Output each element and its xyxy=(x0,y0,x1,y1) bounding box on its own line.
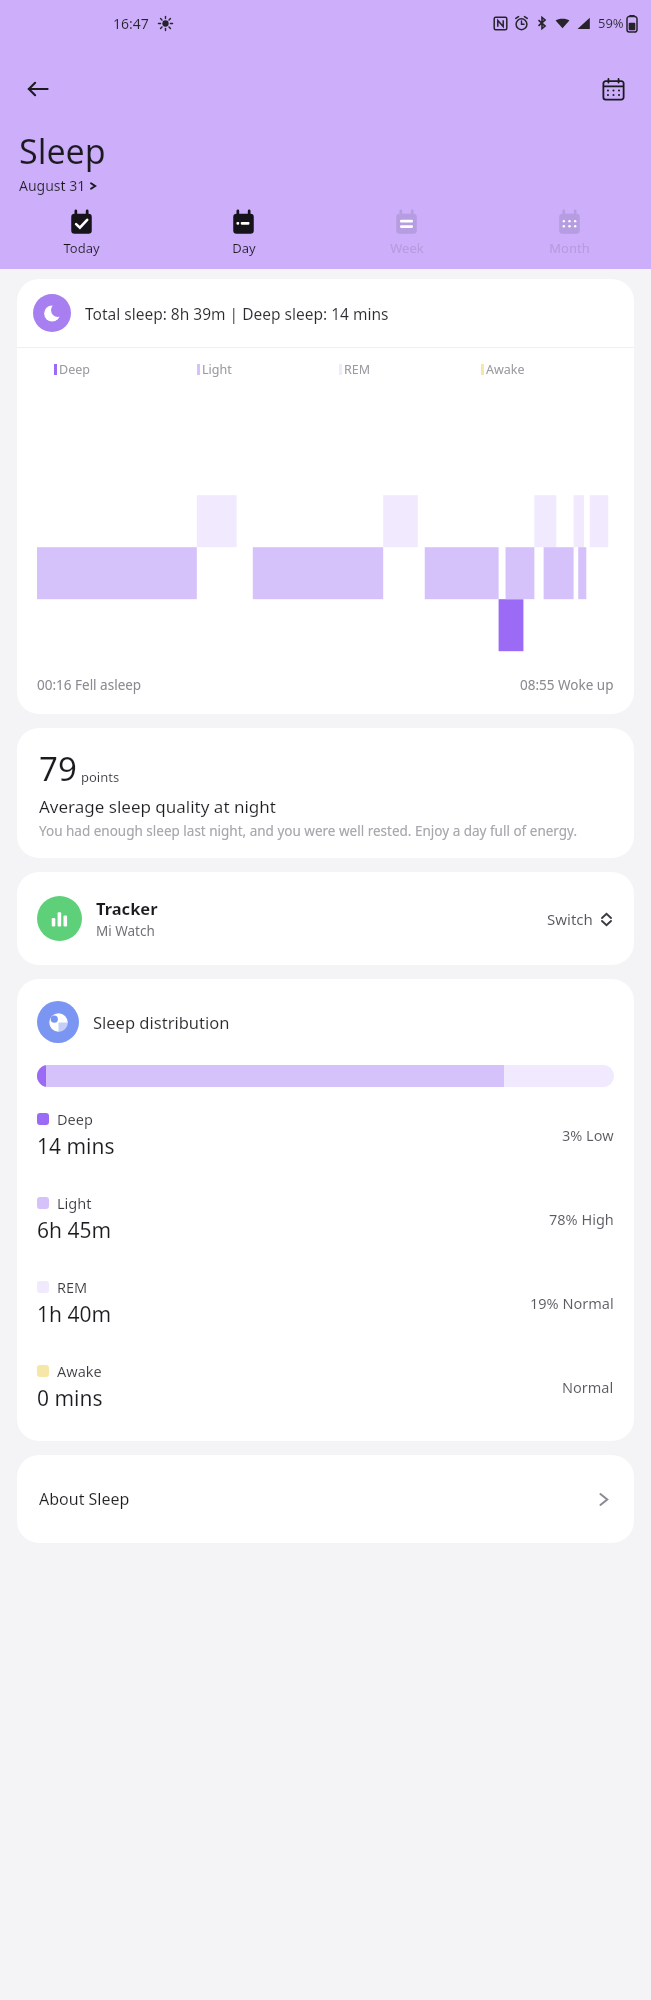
staticText: Week xyxy=(390,239,424,257)
staticText: 3% Low xyxy=(562,1125,614,1145)
button[interactable]: Calendar xyxy=(592,68,634,110)
staticText: Deep xyxy=(59,361,90,378)
staticText: Awake xyxy=(486,361,525,378)
staticText: 16:47 xyxy=(113,14,149,33)
staticText: Light xyxy=(57,1193,92,1213)
staticText: You had enough sleep last night, and you… xyxy=(39,822,578,840)
staticText: Today xyxy=(63,239,100,257)
button[interactable]: 79 xyxy=(17,728,634,858)
button[interactable]: Deep xyxy=(17,1109,634,1161)
button[interactable]: Total sleep: 8h 39m | Deep sleep: 14 min… xyxy=(17,279,634,347)
staticText: 59% xyxy=(598,14,624,32)
button[interactable]: Tracker xyxy=(17,872,634,965)
button[interactable]: August 31 xyxy=(19,176,98,195)
staticText: Sleep xyxy=(19,128,106,174)
staticText: 6h 45m xyxy=(37,1216,112,1245)
staticText: 19% Normal xyxy=(530,1293,614,1313)
button[interactable]: REM xyxy=(17,1277,634,1329)
staticText: 14 mins xyxy=(37,1132,115,1161)
button[interactable]: Awake xyxy=(17,1361,634,1413)
staticText: Mi Watch xyxy=(96,922,155,940)
staticText: Month xyxy=(549,239,590,257)
staticText: Switch xyxy=(547,909,593,929)
staticText: REM xyxy=(57,1277,88,1297)
staticText: Day xyxy=(232,239,256,257)
button[interactable]: Month xyxy=(488,209,651,257)
staticText: Total sleep: 8h 39m | Deep sleep: 14 min… xyxy=(85,303,389,324)
staticText: REM xyxy=(344,361,371,378)
staticText: Awake xyxy=(57,1361,102,1381)
button[interactable]: Today xyxy=(0,209,162,257)
button[interactable]: Light xyxy=(17,1193,634,1245)
staticText: points xyxy=(81,768,120,786)
button[interactable]: Back xyxy=(17,68,59,110)
button[interactable]: Sleep distribution xyxy=(17,979,634,1065)
button[interactable]: Day xyxy=(162,209,325,257)
staticText: About Sleep xyxy=(39,1488,130,1510)
staticText: Average sleep quality at night xyxy=(39,795,276,818)
staticText: Normal xyxy=(562,1377,614,1397)
staticText: 0 mins xyxy=(37,1384,103,1413)
staticText: August 31 xyxy=(19,176,86,195)
staticText: 79 xyxy=(39,746,77,791)
staticText: Deep xyxy=(57,1109,93,1129)
button[interactable]: Week xyxy=(325,209,488,257)
staticText: 1h 40m xyxy=(37,1300,112,1329)
staticText: 00:16 Fell asleep xyxy=(37,676,142,694)
button[interactable]: About Sleep xyxy=(17,1455,634,1543)
staticText: 08:55 Woke up xyxy=(520,676,614,694)
staticText: 78% High xyxy=(549,1209,614,1229)
staticText: Sleep distribution xyxy=(93,1011,230,1033)
staticText: Tracker xyxy=(96,897,158,919)
staticText: Light xyxy=(202,361,232,378)
